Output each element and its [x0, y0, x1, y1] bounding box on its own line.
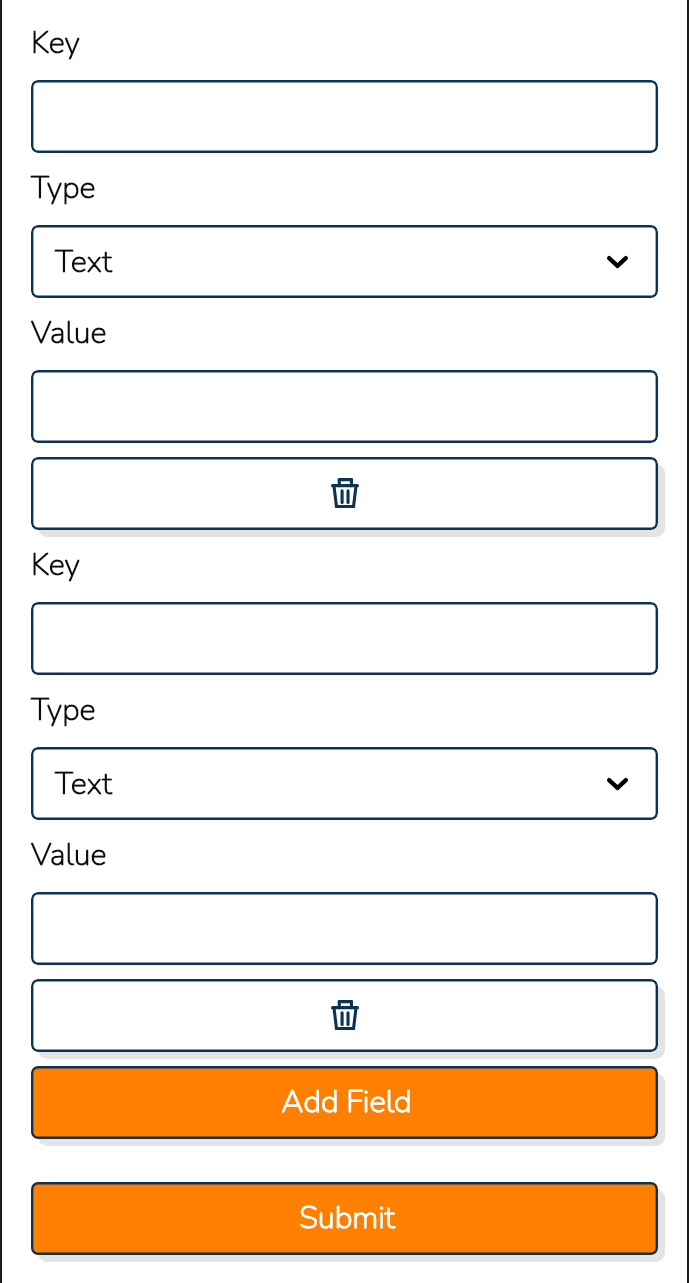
button[interactable]	[31, 892, 658, 965]
button[interactable]: Delete field	[31, 457, 658, 530]
button[interactable]	[31, 602, 658, 675]
staticText: Text	[55, 241, 112, 283]
button[interactable]: Text	[31, 747, 658, 820]
button[interactable]: Add Field	[31, 1066, 658, 1139]
staticText: Text	[55, 763, 112, 805]
button[interactable]: Delete field	[31, 979, 658, 1052]
button[interactable]	[31, 80, 658, 153]
button[interactable]: Text	[31, 225, 658, 298]
staticText: Type	[31, 689, 96, 731]
button[interactable]: Submit	[31, 1182, 658, 1255]
button[interactable]	[31, 370, 658, 443]
staticText: Add Field	[281, 1081, 412, 1123]
staticText: Key	[31, 544, 81, 586]
staticText: Key	[31, 22, 81, 64]
staticText: Type	[31, 167, 96, 209]
staticText: Value	[31, 312, 107, 354]
staticText: Value	[31, 834, 107, 876]
staticText: Submit	[299, 1197, 395, 1239]
